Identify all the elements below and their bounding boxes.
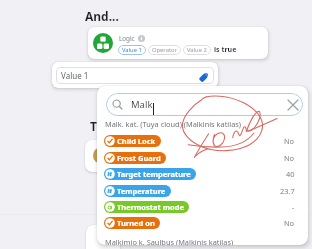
staticText: Thermostat mode — [117, 202, 184, 212]
button[interactable]: Logic block — [88, 27, 268, 59]
other: Logic block — [93, 33, 113, 53]
staticText: is true — [214, 45, 237, 55]
staticText: And... — [85, 8, 119, 24]
staticText: No — [284, 136, 295, 146]
button[interactable]: Search — [106, 93, 303, 116]
button[interactable]: Turned on — [104, 216, 302, 229]
staticText: Th — [90, 118, 105, 134]
staticText: Child Lock — [117, 136, 156, 146]
staticText: 23.7 — [280, 186, 295, 196]
staticText: Turned on — [117, 218, 155, 228]
staticText: Frost Guard — [117, 153, 161, 163]
button[interactable]: Temperature — [104, 184, 302, 197]
button[interactable]: Child Lock — [104, 134, 302, 147]
other: Clear — [288, 100, 298, 110]
button[interactable]: Value 2 — [187, 45, 207, 55]
staticText: Malk. kat. (Tuya cloud) (Malkinis katila… — [105, 119, 242, 129]
other: Search — [112, 99, 123, 110]
staticText: - — [292, 202, 295, 212]
staticText: Value 1 — [61, 70, 89, 81]
staticText: Logic — [119, 34, 135, 43]
button[interactable]: Operator — [152, 45, 177, 55]
button[interactable]: Frost Guard — [104, 151, 302, 164]
button[interactable]: Thermostat mode — [104, 200, 302, 213]
staticText: No — [284, 153, 295, 163]
staticText: No — [284, 218, 295, 228]
button[interactable]: Value 1 — [122, 45, 142, 55]
button[interactable]: Target temperature — [104, 167, 302, 180]
staticText: Value 2 — [187, 46, 207, 54]
other: Tag — [199, 73, 208, 82]
staticText: Temperature — [117, 186, 166, 196]
staticText: Malkimio k. Saulbus (Malkinis katilas) — [105, 237, 234, 245]
staticText: Malk — [131, 98, 153, 111]
staticText: Target temperature — [117, 169, 191, 179]
staticText: 40 — [286, 169, 295, 179]
button[interactable]: Value 1 — [56, 67, 214, 84]
staticText: Operator — [152, 46, 177, 54]
staticText: Value 1 — [122, 46, 142, 54]
